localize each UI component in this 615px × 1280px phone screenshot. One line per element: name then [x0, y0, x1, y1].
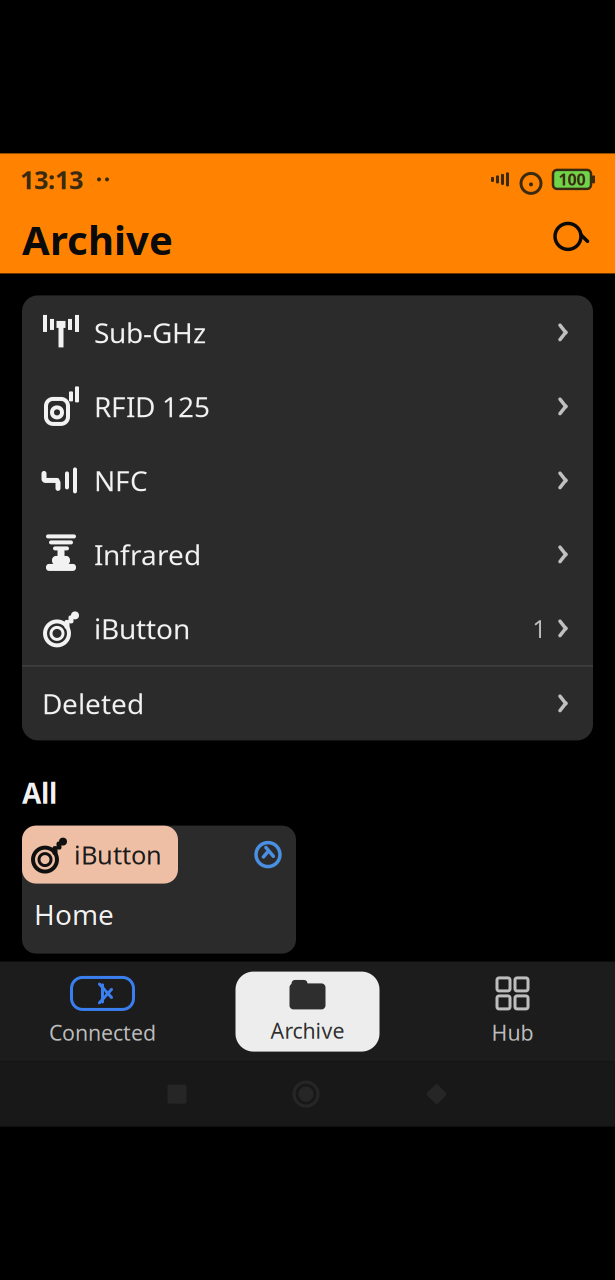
staticText: Sub-GHz [94, 314, 206, 351]
button[interactable]: iButton [22, 591, 593, 665]
staticText: 100 [558, 169, 585, 190]
staticText: Infrared [94, 536, 201, 573]
staticText: 13:13 [20, 163, 83, 196]
staticText: Deleted [42, 685, 144, 722]
staticText: iButton [94, 610, 190, 647]
button[interactable]: Sub-GHz [22, 295, 593, 369]
staticText: 1 [532, 612, 546, 645]
staticText: Archive [270, 1016, 344, 1045]
staticText: All [22, 774, 57, 812]
button[interactable]: RFID 125 [22, 369, 593, 443]
button[interactable]: Hub [410, 969, 615, 1055]
staticText: NFC [94, 462, 148, 499]
staticText: Connected [49, 1018, 156, 1047]
button[interactable]: Connected [0, 969, 205, 1055]
button[interactable]: Archive [235, 972, 379, 1052]
staticText: RFID 125 [94, 388, 210, 425]
staticText: Home [34, 896, 114, 933]
button[interactable]: Search [547, 216, 593, 262]
staticText: Archive [22, 213, 173, 266]
button[interactable]: NFC [22, 443, 593, 517]
staticText: Hub [491, 1018, 533, 1047]
button[interactable]: Deleted [22, 666, 593, 740]
staticText: iButton [74, 838, 162, 871]
button[interactable]: iButton [22, 826, 296, 954]
button[interactable]: Infrared [22, 517, 593, 591]
